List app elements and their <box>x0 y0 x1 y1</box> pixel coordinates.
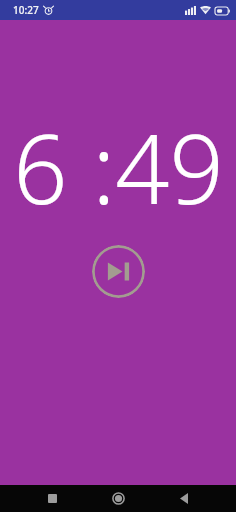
staticText: 10:27 <box>13 3 39 17</box>
button[interactable]: Home <box>85 485 151 512</box>
button[interactable]: Skip next <box>92 245 145 298</box>
staticText: 6 :49 <box>13 102 224 231</box>
button[interactable]: Recents <box>19 485 85 512</box>
button[interactable]: Back <box>151 485 217 512</box>
